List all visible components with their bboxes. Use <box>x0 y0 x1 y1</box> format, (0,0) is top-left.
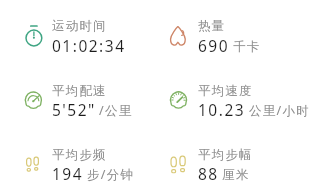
staticText: 千卡 <box>233 39 261 55</box>
staticText: 194 <box>52 163 84 184</box>
staticText: 平均配速 <box>52 83 107 99</box>
staticText: 平均速度 <box>198 83 253 99</box>
staticText: 01:02:34 <box>52 35 126 56</box>
button[interactable]: Average stride length <box>158 132 304 189</box>
staticText: 厘米 <box>222 167 250 183</box>
staticText: 步/分钟 <box>87 166 135 183</box>
button[interactable]: Average speed <box>158 68 304 132</box>
staticText: /公里 <box>99 102 133 119</box>
button[interactable]: Average cadence <box>12 132 158 189</box>
staticText: 热量 <box>198 18 226 34</box>
button[interactable]: Calories burned <box>158 4 304 68</box>
staticText: 平均步频 <box>52 147 107 163</box>
staticText: 690 <box>198 35 230 56</box>
staticText: 88 <box>198 163 219 184</box>
staticText: 平均步幅 <box>198 147 253 163</box>
staticText: 10.23 <box>198 99 246 120</box>
staticText: 公里/小时 <box>249 102 311 119</box>
staticText: 5'52" <box>52 99 96 120</box>
staticText: 运动时间 <box>52 18 107 34</box>
button[interactable]: Workout duration <box>12 4 158 68</box>
button[interactable]: Average pace <box>12 68 158 132</box>
